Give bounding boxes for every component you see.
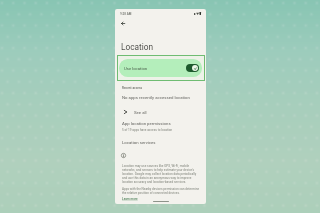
staticText: Location may use sources like GPS, Wi-Fi… [122,164,197,184]
staticText: Recent access [122,86,143,90]
staticText: App location permissions [122,121,171,126]
button[interactable]: Use location [117,55,205,81]
button[interactable]: Learn more [122,197,138,201]
button[interactable]: Back [117,18,128,29]
button[interactable]: App location permissions [115,121,206,132]
staticText: Apps with the Nearby devices permission … [122,187,200,195]
button[interactable]: See all [115,106,206,118]
staticText: 9:28 AM [120,12,132,16]
staticText: No apps recently accessed location [122,95,190,100]
staticText: 5 of 19 apps have access to location [122,128,173,132]
staticText: Location services [122,140,156,145]
staticText: See all [134,110,147,115]
staticText: Use location [124,66,148,71]
staticText: Location [121,42,154,52]
